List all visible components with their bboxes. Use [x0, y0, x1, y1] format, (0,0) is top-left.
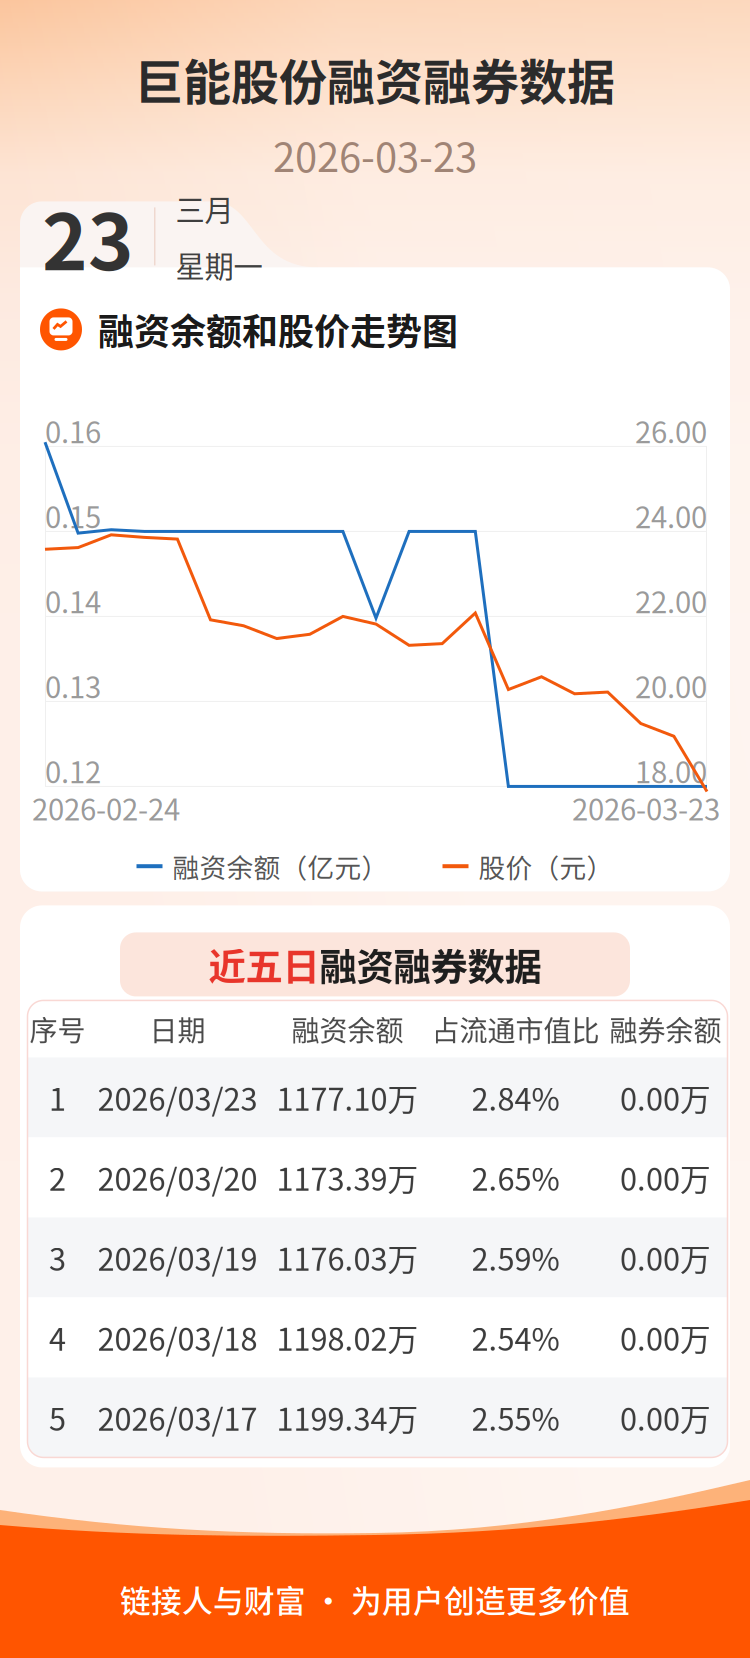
- staticText: 融资余额: [291, 1009, 403, 1049]
- staticText: 日期: [149, 1009, 205, 1049]
- staticText: 2026/03/20: [97, 1155, 257, 1200]
- staticText: 2026/03/19: [97, 1235, 257, 1280]
- staticText: 2026/03/18: [97, 1315, 257, 1360]
- staticText: 2026-03-23: [572, 786, 720, 829]
- staticText: 2.84%: [471, 1075, 559, 1120]
- staticText: 0.13: [45, 664, 101, 707]
- staticText: 2026-02-24: [32, 786, 180, 829]
- staticText: 近五日: [208, 937, 319, 991]
- staticText: 5: [49, 1395, 66, 1440]
- staticText: 0.16: [45, 409, 101, 452]
- staticText: 4: [49, 1315, 66, 1360]
- staticText: 0.00万: [620, 1395, 711, 1440]
- staticText: 22.00: [635, 579, 707, 622]
- staticText: 2.65%: [471, 1155, 559, 1200]
- staticText: 链接人与财富 · 为用户创造更多价值: [120, 1577, 630, 1621]
- staticText: 24.00: [635, 494, 707, 537]
- staticText: 占流通市值比: [431, 1009, 599, 1049]
- staticText: 融资余额和股价走势图: [98, 303, 458, 355]
- staticText: 序号: [29, 1009, 85, 1049]
- staticText: 星期一: [175, 243, 262, 286]
- staticText: 1198.02万: [276, 1315, 418, 1360]
- staticText: 2.54%: [471, 1315, 559, 1360]
- staticText: 三月: [175, 187, 233, 229]
- staticText: 1173.39万: [276, 1155, 418, 1200]
- staticText: 1176.03万: [276, 1235, 418, 1280]
- staticText: 融资余额（亿元）: [172, 847, 388, 885]
- staticText: 融券余额: [609, 1009, 721, 1049]
- staticText: 2026/03/17: [97, 1395, 257, 1440]
- staticText: 0.00万: [620, 1315, 711, 1360]
- staticText: 1: [49, 1075, 66, 1120]
- staticText: 20.00: [635, 664, 707, 707]
- staticText: 0.00万: [620, 1155, 711, 1200]
- staticText: 股价（元）: [478, 847, 613, 885]
- staticText: 1199.34万: [276, 1395, 418, 1440]
- staticText: 3: [49, 1235, 66, 1280]
- staticText: 2: [49, 1155, 66, 1200]
- staticText: 0.15: [45, 494, 101, 537]
- staticText: 0.00万: [620, 1075, 711, 1120]
- staticText: 0.00万: [620, 1235, 711, 1280]
- staticText: 2.55%: [471, 1395, 559, 1440]
- staticText: 融资融券数据: [319, 937, 541, 991]
- staticText: 23: [42, 180, 134, 292]
- staticText: 0.14: [45, 579, 101, 622]
- staticText: 0.12: [45, 749, 101, 792]
- staticText: 巨能股份融资融券数据: [135, 44, 615, 113]
- staticText: 2026/03/23: [97, 1075, 257, 1120]
- staticText: 18.00: [635, 749, 707, 792]
- staticText: 26.00: [635, 409, 707, 452]
- staticText: 1177.10万: [276, 1075, 418, 1120]
- staticText: 2026-03-23: [273, 125, 477, 183]
- staticText: 2.59%: [471, 1235, 559, 1280]
